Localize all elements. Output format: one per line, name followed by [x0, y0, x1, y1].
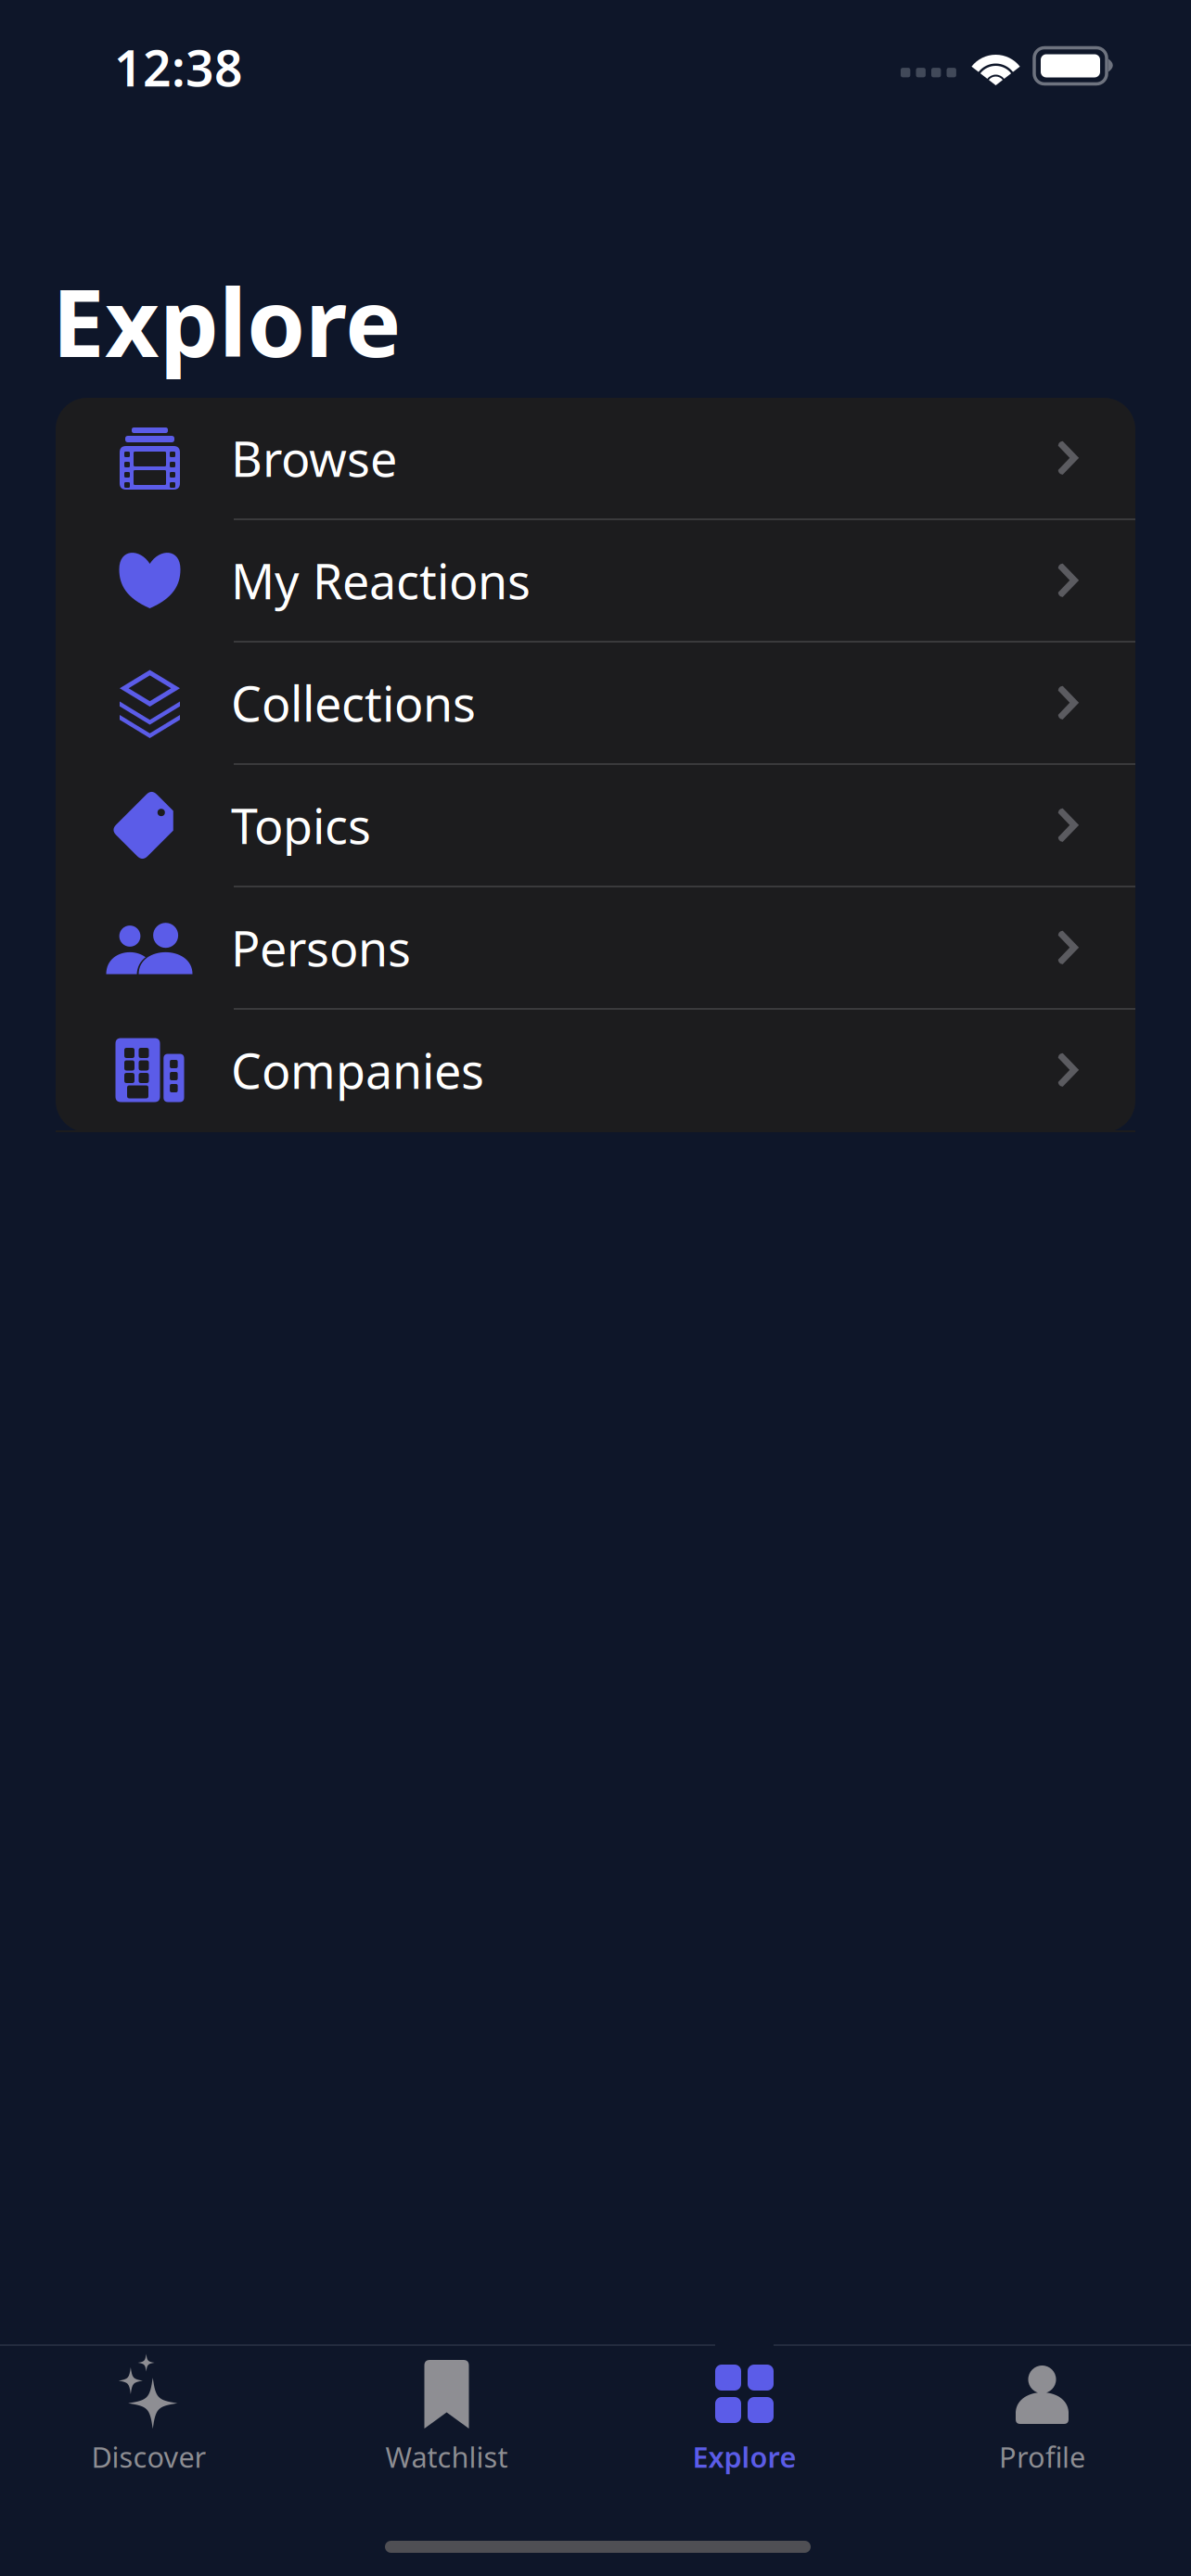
button[interactable]: Persons — [56, 887, 1135, 1010]
staticText: 12:38 — [114, 34, 243, 100]
button[interactable]: Discover — [0, 2346, 298, 2485]
button[interactable]: Collections — [56, 643, 1135, 765]
staticText: Browse — [231, 426, 397, 490]
button[interactable]: Topics — [56, 765, 1135, 887]
button[interactable]: My Reactions — [56, 520, 1135, 643]
button[interactable]: Companies — [56, 1010, 1135, 1132]
staticText: Companies — [231, 1038, 484, 1102]
staticText: Discover — [91, 2438, 206, 2476]
button[interactable]: Watchlist — [298, 2346, 595, 2485]
button[interactable]: Profile — [893, 2346, 1191, 2485]
staticText: Watchlist — [385, 2438, 508, 2476]
staticText: Collections — [231, 671, 476, 735]
staticText: Explore — [692, 2438, 796, 2476]
staticText: My Reactions — [231, 548, 531, 613]
button[interactable]: Browse — [56, 398, 1135, 520]
staticText: Profile — [999, 2438, 1085, 2476]
staticText: Topics — [231, 793, 371, 857]
button[interactable]: Explore — [595, 2346, 893, 2485]
staticText: Persons — [231, 916, 411, 980]
staticText: Explore — [52, 258, 401, 383]
